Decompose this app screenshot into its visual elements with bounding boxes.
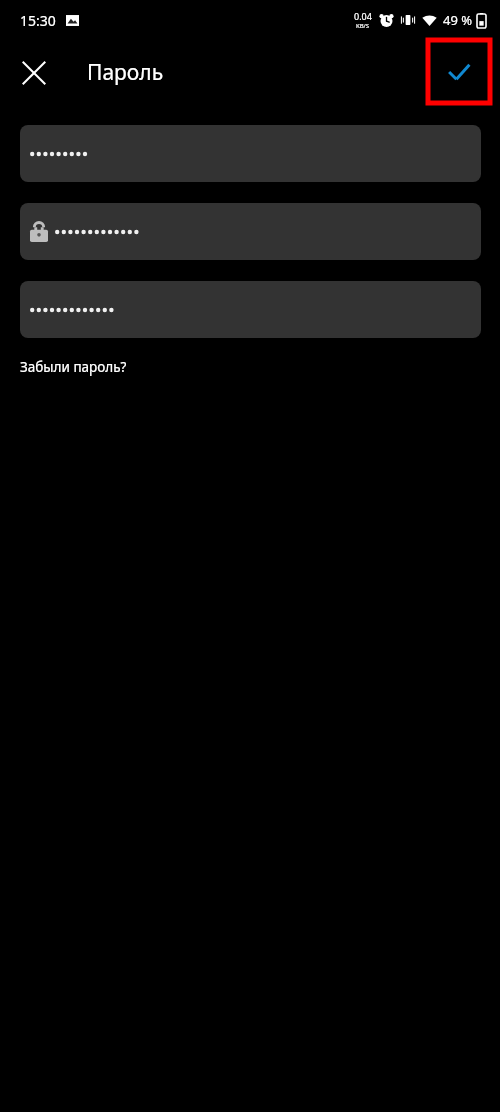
staticText: KB/S — [356, 22, 370, 30]
button[interactable]: Забыли пароль? — [20, 356, 127, 378]
button[interactable] — [20, 203, 481, 260]
button[interactable] — [20, 281, 481, 338]
button[interactable]: Close — [10, 49, 58, 97]
button[interactable]: Confirm — [428, 40, 490, 103]
staticText: 49 % — [443, 11, 473, 29]
staticText: Пароль — [87, 58, 164, 87]
staticText: Забыли пароль? — [20, 358, 127, 376]
staticText: 15:30 — [20, 11, 56, 30]
button[interactable] — [20, 125, 481, 182]
staticText: 0.04 — [354, 10, 372, 22]
